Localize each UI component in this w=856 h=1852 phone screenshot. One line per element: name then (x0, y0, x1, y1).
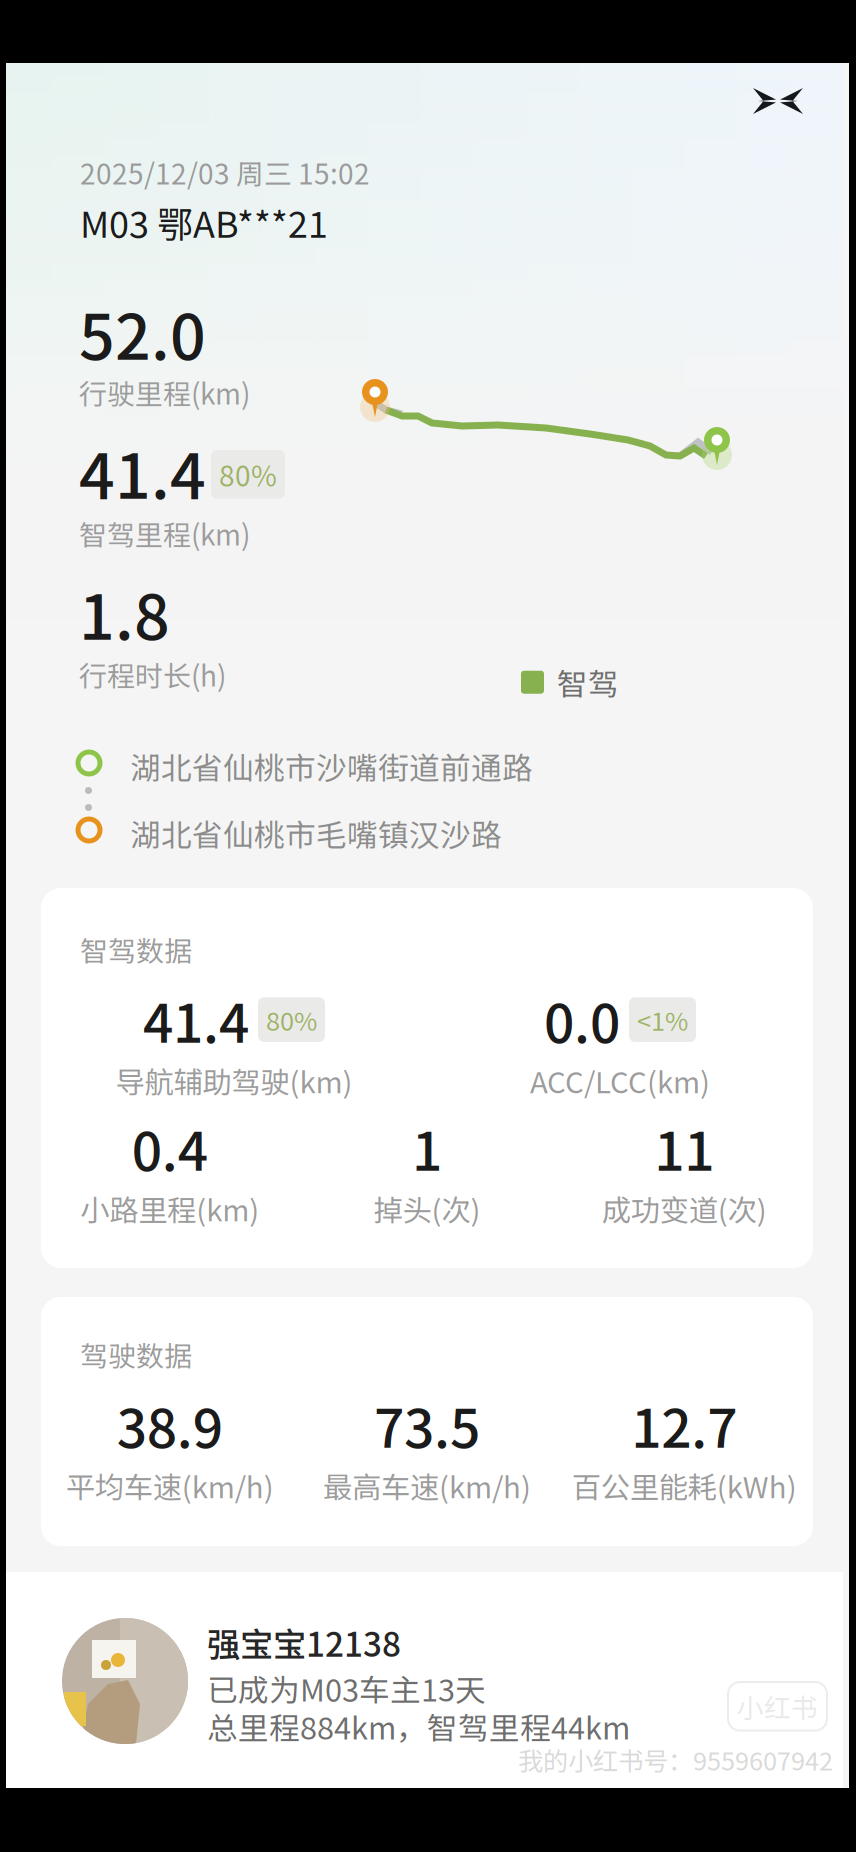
staticText: 湖北省仙桃市沙嘴街道前通路 (130, 744, 533, 788)
staticText: 成功变道(次) (602, 1187, 767, 1230)
staticText: 小红书 (737, 1687, 818, 1726)
staticText: 1.8 (79, 567, 170, 658)
staticText: 52.0 (79, 287, 206, 378)
staticText: 1 (412, 1109, 442, 1186)
staticText: 智驾 (557, 660, 619, 704)
staticText: 38.9 (117, 1386, 223, 1463)
staticText: 小路里程(km) (80, 1187, 259, 1230)
staticText: 强宝宝12138 (207, 1618, 401, 1666)
staticText: 0.0 (544, 981, 620, 1058)
staticText: M03 鄂AB***21 (80, 196, 328, 248)
staticText: 掉头(次) (373, 1187, 480, 1230)
staticText: 智驾里程(km) (79, 513, 250, 553)
staticText: <1% (637, 1001, 688, 1038)
staticText: 80% (266, 1001, 317, 1038)
staticText: 百公里能耗(kWh) (572, 1464, 797, 1507)
staticText: ACC/LCC(km) (530, 1059, 710, 1102)
staticText: 最高车速(km/h) (323, 1464, 531, 1507)
staticText: 行驶里程(km) (79, 372, 250, 412)
staticText: 41.4 (79, 426, 206, 517)
staticText: 已成为M03车主13天 (207, 1666, 486, 1710)
staticText: 2025/12/03 周三 15:02 (80, 152, 370, 192)
staticText: 41.4 (143, 981, 249, 1058)
staticText: 导航辅助驾驶(km) (115, 1059, 352, 1102)
staticText: 智驾数据 (80, 929, 192, 969)
staticText: 我的小红书号：9559607942 (518, 1741, 833, 1778)
staticText: 0.4 (132, 1109, 208, 1186)
staticText: 12.7 (631, 1386, 737, 1463)
button[interactable]: XPeng (753, 88, 803, 114)
staticText: 湖北省仙桃市毛嘴镇汉沙路 (130, 811, 502, 855)
staticText: 行程时长(h) (79, 654, 226, 694)
staticText: 80% (219, 454, 277, 494)
staticText: 73.5 (374, 1386, 480, 1463)
staticText: 驾驶数据 (80, 1334, 192, 1374)
staticText: 总里程884km，智驾里程44km (207, 1704, 630, 1748)
staticText: 平均车速(km/h) (66, 1464, 274, 1507)
staticText: 11 (654, 1109, 714, 1186)
